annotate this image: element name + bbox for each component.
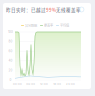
staticText: 12:00 <box>40 82 48 86</box>
staticText: 异常数据 <box>25 23 37 28</box>
staticText: 覆盖率 <box>44 23 53 28</box>
staticText: 24:00 <box>66 82 75 86</box>
button[interactable]: 说明 <box>79 7 84 12</box>
staticText: 100 <box>8 30 13 34</box>
staticText: 0 <box>9 78 11 82</box>
staticText: 昨日实时：已越过 <box>6 6 46 13</box>
staticText: 99% <box>46 6 56 13</box>
staticText: 平均值 <box>60 23 69 28</box>
staticText: 40 <box>8 59 12 62</box>
staticText: 无线覆盖率 <box>56 6 81 13</box>
staticText: 20 <box>8 69 12 72</box>
staticText: 60 <box>8 49 12 53</box>
staticText: 06:00 <box>26 82 35 86</box>
staticText: 00:00 <box>13 82 22 86</box>
staticText: 18:00 <box>53 82 61 86</box>
staticText: 80 <box>8 40 12 43</box>
